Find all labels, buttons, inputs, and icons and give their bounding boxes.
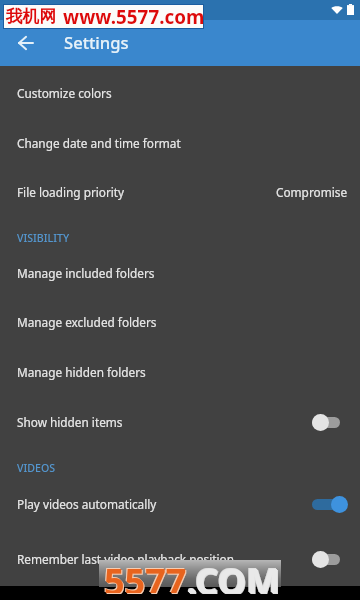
button[interactable]: Remember last video playback position [0, 541, 360, 577]
staticText: 我机网 [6, 6, 56, 27]
button[interactable]: Play videos automatically [0, 486, 360, 522]
staticText: Manage included folders [17, 265, 155, 281]
staticText: .COM [186, 556, 280, 592]
staticText: Show hidden items [17, 414, 123, 430]
button[interactable]: Customize colors [0, 75, 360, 111]
staticText: File loading priority [17, 184, 125, 200]
button[interactable]: Disabled [312, 546, 348, 572]
staticText: 5577 [103, 556, 186, 592]
button[interactable]: Enabled [312, 491, 348, 517]
staticText: Play videos automatically [17, 496, 157, 512]
staticText: Compromise [276, 184, 348, 200]
staticText: 5577 [105, 558, 188, 594]
staticText: www.5577.com [63, 4, 205, 29]
button[interactable]: Show hidden items [0, 404, 360, 440]
button[interactable]: Change date and time format [0, 125, 360, 161]
button[interactable]: Manage included folders [0, 255, 360, 291]
staticText: .COM [188, 558, 282, 594]
staticText: Manage hidden folders [17, 364, 146, 380]
staticText: Change date and time format [17, 135, 181, 151]
staticText: 5577 [104, 557, 187, 593]
staticText: VIDEOS [17, 461, 56, 475]
staticText: Customize colors [17, 85, 112, 101]
staticText: Settings [64, 31, 129, 54]
staticText: VISIBILITY [17, 231, 70, 245]
staticText: Remember last video playback position [17, 551, 234, 567]
staticText: Manage excluded folders [17, 314, 157, 330]
button[interactable]: Disabled [312, 409, 348, 435]
button[interactable]: Manage excluded folders [0, 304, 360, 340]
button[interactable]: Manage hidden folders [0, 354, 360, 390]
button[interactable]: File loading priority [0, 174, 360, 210]
staticText: .COM [187, 557, 281, 593]
button[interactable]: Navigate up [8, 26, 42, 60]
